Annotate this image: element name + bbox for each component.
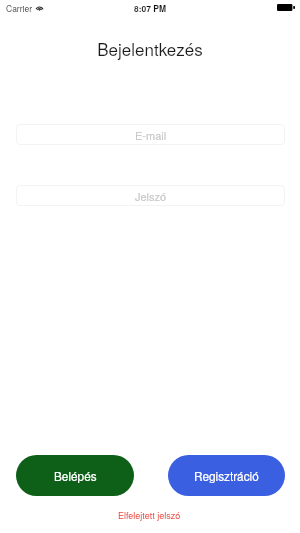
staticText: Bejelentkezés: [0, 36, 300, 60]
other: Battery full: [277, 4, 295, 11]
button[interactable]: Jelszó: [16, 185, 285, 206]
button[interactable]: Belépés: [16, 455, 134, 496]
staticText: Carrier: [6, 2, 32, 14]
staticText: Jelszó: [135, 188, 167, 204]
staticText: Regisztráció: [194, 467, 259, 484]
staticText: E-mail: [135, 127, 167, 143]
staticText: Elfelejtett jelszó: [118, 509, 181, 522]
button[interactable]: E-mail: [16, 124, 285, 145]
button[interactable]: Regisztráció: [168, 455, 285, 496]
staticText: Belépés: [54, 467, 97, 484]
other: Wi-Fi: [35, 4, 44, 11]
button[interactable]: Elfelejtett jelszó: [0, 509, 300, 522]
staticText: 8:07 PM: [134, 2, 167, 14]
